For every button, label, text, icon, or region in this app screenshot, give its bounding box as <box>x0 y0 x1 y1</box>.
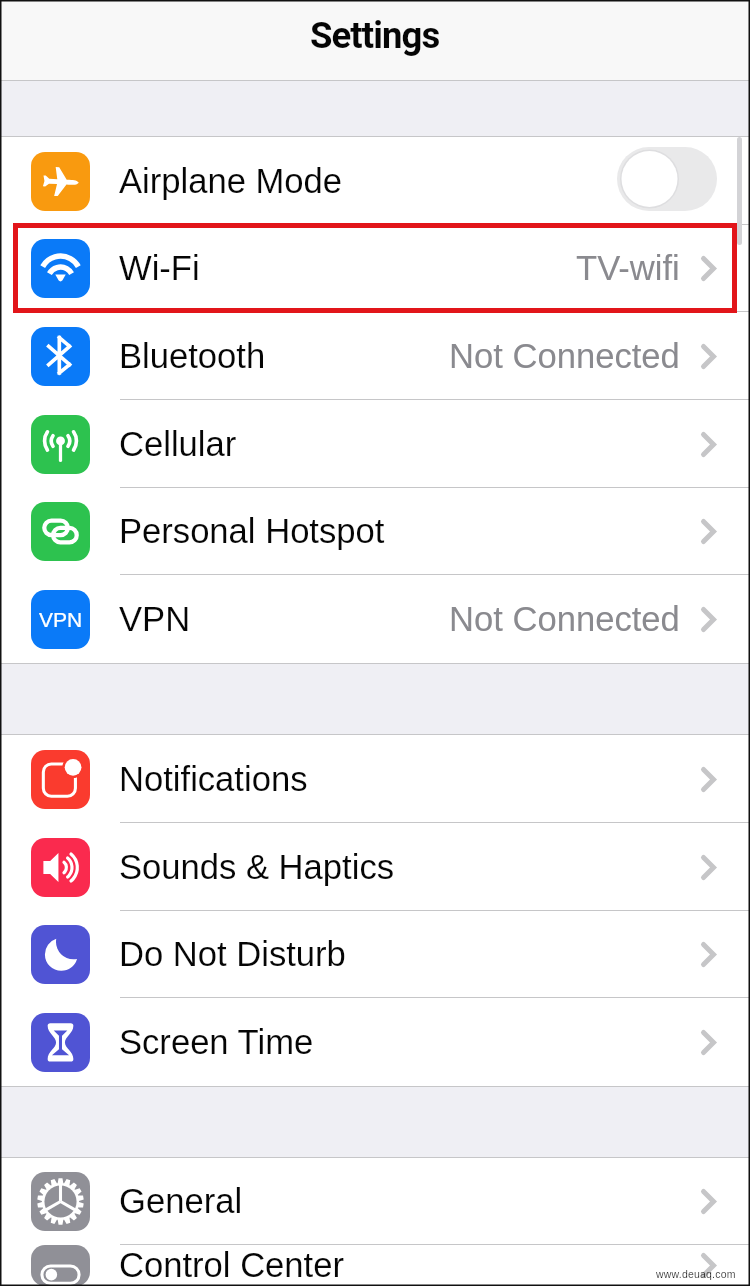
button[interactable]: Bluetooth <box>0 312 750 400</box>
staticText: General <box>119 1182 243 1221</box>
staticText: Wi-Fi <box>119 249 200 288</box>
button[interactable]: Wi-Fi <box>0 225 750 312</box>
staticText: Settings <box>310 14 440 57</box>
button[interactable]: Airplane Mode switch, off <box>617 147 717 211</box>
button[interactable]: Do Not Disturb <box>0 911 750 998</box>
button[interactable]: Airplane Mode <box>0 137 750 225</box>
staticText: Not Connected <box>449 600 680 639</box>
button[interactable]: General <box>0 1158 750 1245</box>
staticText: Personal Hotspot <box>119 512 385 551</box>
staticText: Bluetooth <box>119 337 266 376</box>
staticText: TV-wifi <box>576 249 680 288</box>
staticText: Airplane Mode <box>119 162 343 201</box>
button[interactable]: Sounds & Haptics <box>0 823 750 911</box>
staticText: Not Connected <box>449 337 680 376</box>
button[interactable]: Cellular <box>0 400 750 488</box>
staticText: Screen Time <box>119 1023 314 1062</box>
staticText: Notifications <box>119 760 308 799</box>
button[interactable]: Notifications <box>0 735 750 823</box>
staticText: Sounds & Haptics <box>119 848 394 887</box>
staticText: Do Not Disturb <box>119 935 346 974</box>
staticText: VPN <box>39 608 83 631</box>
button[interactable]: Control Center <box>0 1245 750 1286</box>
staticText: Control Center <box>119 1246 344 1285</box>
button[interactable]: Screen Time <box>0 998 750 1086</box>
staticText: VPN <box>119 600 191 639</box>
button[interactable]: VPN <box>0 575 750 663</box>
staticText: Cellular <box>119 425 237 464</box>
button[interactable]: Personal Hotspot <box>0 488 750 575</box>
staticText: www.deuaq.com <box>656 1268 736 1280</box>
